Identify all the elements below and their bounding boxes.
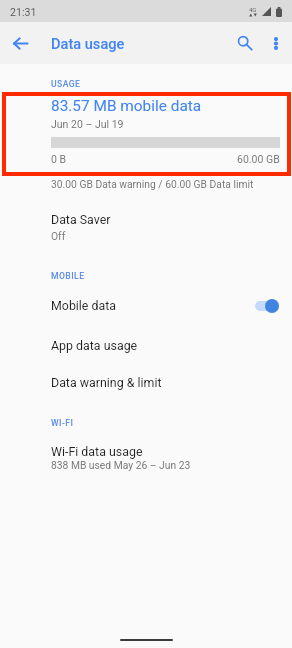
staticText: Jun 20 – Jul 19 bbox=[51, 118, 124, 130]
staticText: Off bbox=[51, 230, 66, 242]
staticText: App data usage bbox=[51, 338, 138, 353]
button[interactable]: App data usage bbox=[0, 338, 292, 353]
staticText: Data Saver bbox=[51, 212, 111, 227]
staticText: 0 B bbox=[51, 153, 67, 165]
button[interactable]: Mobile data bbox=[0, 298, 292, 313]
button[interactable]: Data Saver bbox=[0, 212, 292, 242]
staticText: 4G bbox=[249, 6, 257, 13]
staticText: Data warning & limit bbox=[51, 375, 162, 390]
staticText: WI-FI bbox=[51, 418, 74, 428]
staticText: MOBILE bbox=[51, 271, 85, 281]
staticText: 83.57 MB mobile data bbox=[51, 97, 202, 115]
staticText: Wi-Fi data usage bbox=[51, 444, 143, 459]
button[interactable]: More options bbox=[260, 27, 292, 59]
staticText: 30.00 GB Data warning / 60.00 GB Data li… bbox=[51, 178, 254, 190]
staticText: Data usage bbox=[51, 35, 125, 52]
staticText: USAGE bbox=[51, 79, 81, 89]
button[interactable]: Search bbox=[230, 25, 260, 61]
staticText: Mobile data bbox=[51, 298, 117, 313]
button[interactable]: Data warning & limit bbox=[0, 375, 292, 390]
button[interactable]: Wi-Fi data usage bbox=[0, 444, 292, 471]
button[interactable]: Back bbox=[2, 25, 38, 61]
staticText: 60.00 GB bbox=[237, 153, 280, 165]
staticText: 21:31 bbox=[10, 6, 37, 18]
staticText: 838 MB used May 26 – Jun 23 bbox=[51, 459, 191, 471]
